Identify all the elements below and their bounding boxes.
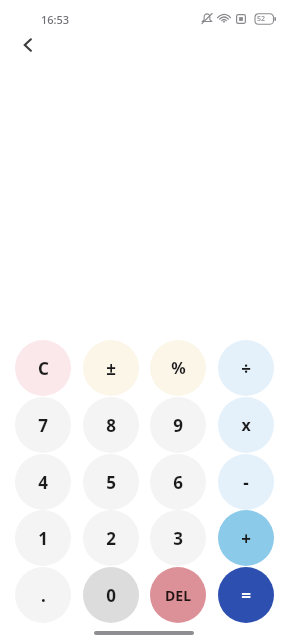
button[interactable]: ÷ xyxy=(218,340,274,396)
staticText: 6 xyxy=(173,471,183,494)
button[interactable]: 5 xyxy=(83,454,139,510)
button[interactable]: x xyxy=(218,397,274,453)
staticText: . xyxy=(41,584,46,607)
button[interactable]: 4 xyxy=(15,454,71,510)
button[interactable]: 7 xyxy=(15,397,71,453)
staticText: ± xyxy=(106,357,116,380)
button[interactable]: DEL xyxy=(150,567,206,623)
button[interactable]: 0 xyxy=(83,567,139,623)
button[interactable]: % xyxy=(150,340,206,396)
button[interactable]: Back xyxy=(12,29,44,61)
staticText: 7 xyxy=(38,414,48,437)
button[interactable]: 8 xyxy=(83,397,139,453)
staticText: = xyxy=(241,584,251,607)
button[interactable]: . xyxy=(15,567,71,623)
button[interactable]: 6 xyxy=(150,454,206,510)
staticText: 2 xyxy=(106,527,116,550)
button[interactable]: 1 xyxy=(15,510,71,566)
staticText: 5 xyxy=(106,471,116,494)
button[interactable]: = xyxy=(218,567,274,623)
staticText: 16:53 xyxy=(41,12,70,27)
staticText: 52 xyxy=(257,14,266,24)
staticText: 4 xyxy=(38,471,48,494)
button[interactable]: C xyxy=(15,340,71,396)
staticText: 3 xyxy=(173,527,183,550)
staticText: ÷ xyxy=(241,357,251,380)
staticText: DEL xyxy=(165,586,191,605)
staticText: - xyxy=(243,471,249,494)
button[interactable]: 9 xyxy=(150,397,206,453)
staticText: 9 xyxy=(173,414,183,437)
staticText: 8 xyxy=(106,414,116,437)
staticText: % xyxy=(171,357,186,379)
button[interactable]: ± xyxy=(83,340,139,396)
button[interactable]: - xyxy=(218,454,274,510)
staticText: + xyxy=(241,527,251,550)
staticText: x xyxy=(241,414,251,436)
staticText: 1 xyxy=(38,527,48,550)
button[interactable]: + xyxy=(218,510,274,566)
button[interactable]: 2 xyxy=(83,510,139,566)
button[interactable]: 3 xyxy=(150,510,206,566)
staticText: C xyxy=(38,357,49,380)
staticText: 0 xyxy=(106,584,116,607)
